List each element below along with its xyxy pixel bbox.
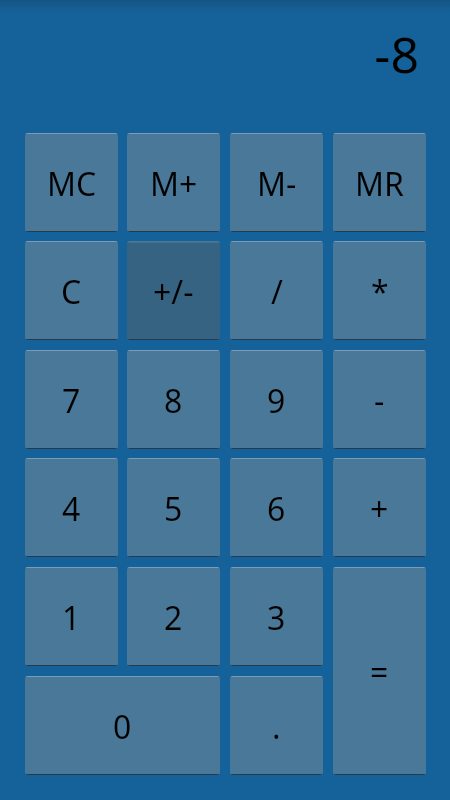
button[interactable]: 4 <box>25 458 118 557</box>
staticText: 1 <box>62 596 81 640</box>
staticText: 4 <box>62 487 81 531</box>
button[interactable]: Memory add <box>127 133 220 232</box>
staticText: -8 <box>0 20 419 88</box>
button[interactable]: Clear <box>25 241 118 340</box>
button[interactable]: Multiply <box>333 241 426 340</box>
button[interactable]: Decimal point <box>230 676 323 775</box>
staticText: M- <box>257 162 297 206</box>
staticText: 3 <box>267 596 286 640</box>
staticText: / <box>271 270 283 314</box>
staticText: MR <box>355 162 404 206</box>
staticText: . <box>272 705 281 749</box>
button[interactable]: 3 <box>230 567 323 666</box>
button[interactable]: 2 <box>127 567 220 666</box>
button[interactable]: Memory clear <box>25 133 118 232</box>
staticText: 6 <box>267 487 286 531</box>
staticText: 5 <box>164 487 183 531</box>
staticText: C <box>61 270 82 314</box>
staticText: MC <box>47 162 97 206</box>
staticText: 9 <box>267 379 286 423</box>
button[interactable]: 5 <box>127 458 220 557</box>
button[interactable]: Change sign <box>127 241 220 340</box>
staticText: 2 <box>164 596 183 640</box>
staticText: * <box>371 270 389 314</box>
staticText: +/- <box>153 270 194 314</box>
button[interactable]: 8 <box>127 350 220 449</box>
button[interactable]: Subtract <box>333 350 426 449</box>
button[interactable]: 9 <box>230 350 323 449</box>
button[interactable]: 0 <box>25 676 220 775</box>
staticText: 7 <box>62 379 81 423</box>
staticText: M+ <box>150 162 198 206</box>
staticText: = <box>370 650 389 694</box>
button[interactable]: Add <box>333 458 426 557</box>
button[interactable]: -8 <box>0 0 450 133</box>
button[interactable]: 7 <box>25 350 118 449</box>
staticText: 0 <box>113 705 132 749</box>
staticText: 8 <box>164 379 183 423</box>
button[interactable]: 6 <box>230 458 323 557</box>
button[interactable]: Memory recall <box>333 133 426 232</box>
button[interactable]: 1 <box>25 567 118 666</box>
staticText: - <box>374 379 385 423</box>
staticText: + <box>370 487 389 531</box>
button[interactable]: Divide <box>230 241 323 340</box>
button[interactable]: Memory subtract <box>230 133 323 232</box>
button[interactable]: Equals <box>333 567 426 775</box>
